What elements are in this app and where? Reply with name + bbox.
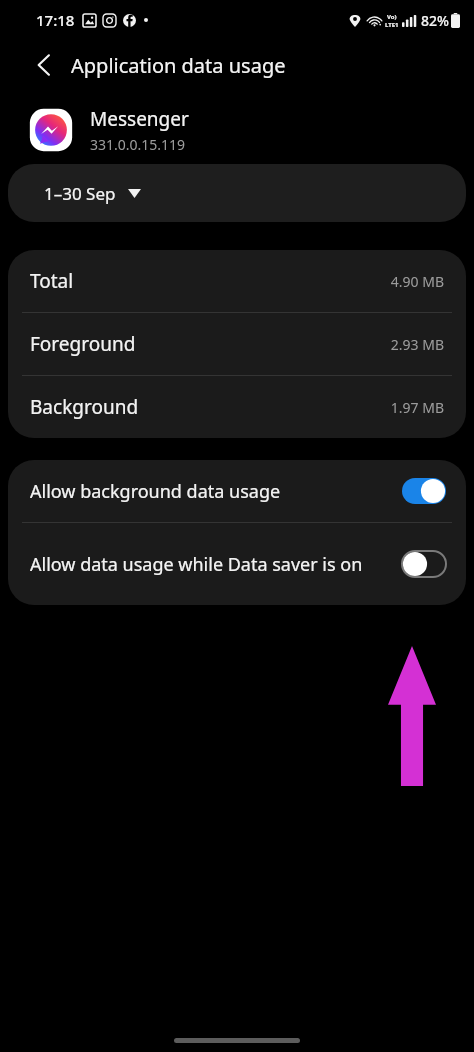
button[interactable]: Allow background data usage	[8, 460, 466, 522]
button[interactable]: 1–30 Sep	[8, 164, 466, 222]
button[interactable]: Foreground	[8, 313, 466, 375]
staticText: 17:18	[36, 10, 75, 30]
staticText: 331.0.0.15.119	[90, 135, 186, 154]
staticText: 2.93 MB	[390, 335, 444, 354]
button[interactable]: Allow data usage while Data saver is on	[8, 523, 466, 605]
button[interactable]: Toggle on	[402, 478, 446, 504]
staticText: 1.97 MB	[390, 398, 444, 417]
staticText: 82%	[421, 11, 449, 30]
staticText: Application data usage	[71, 52, 286, 79]
staticText: 1–30 Sep	[44, 182, 116, 205]
staticText: Allow background data usage	[30, 479, 392, 504]
staticText: Messenger	[90, 106, 189, 132]
staticText: Total	[30, 268, 390, 294]
staticText: Foreground	[30, 331, 390, 357]
button[interactable]: Background	[8, 376, 466, 438]
button[interactable]: Back	[26, 47, 62, 83]
staticText: 4.90 MB	[390, 272, 444, 291]
button[interactable]: Total	[8, 250, 466, 312]
staticText: Vo)	[387, 13, 397, 21]
staticText: Background	[30, 394, 390, 420]
staticText: LTE1	[385, 21, 399, 29]
staticText: Allow data usage while Data saver is on	[30, 552, 392, 577]
button[interactable]: Toggle off	[402, 551, 446, 577]
